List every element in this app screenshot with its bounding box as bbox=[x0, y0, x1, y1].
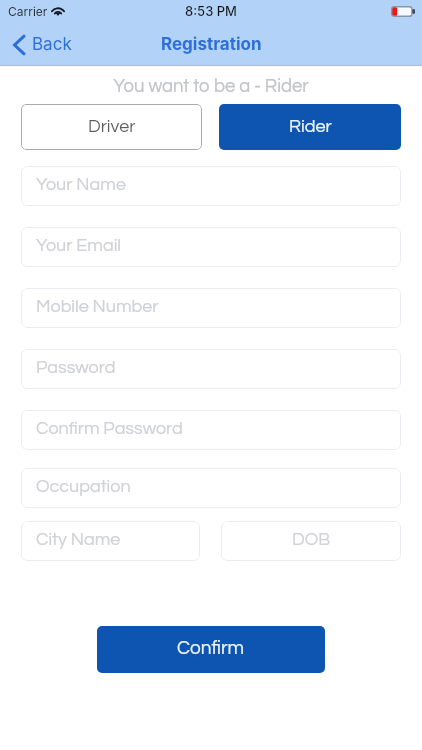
staticText: Driver bbox=[88, 117, 136, 136]
staticText: Back bbox=[32, 34, 72, 55]
staticText: Your Email bbox=[36, 236, 122, 255]
button[interactable]: City Name bbox=[21, 521, 200, 561]
staticText: Registration bbox=[161, 34, 262, 55]
button[interactable]: Confirm Password bbox=[21, 410, 401, 450]
staticText: City Name bbox=[36, 530, 121, 549]
button[interactable]: Rider bbox=[219, 104, 401, 150]
button[interactable]: Confirm bbox=[97, 626, 325, 673]
staticText: DOB bbox=[292, 530, 331, 549]
button[interactable]: Driver bbox=[21, 104, 202, 150]
button[interactable]: Your Email bbox=[21, 227, 401, 267]
staticText: Confirm Password bbox=[36, 419, 183, 438]
button[interactable]: Back bbox=[0, 27, 84, 62]
button[interactable]: Password bbox=[21, 349, 401, 389]
staticText: Password bbox=[36, 358, 116, 377]
staticText: 8:53 PM bbox=[185, 3, 237, 19]
staticText: You want to be a - Rider bbox=[21, 77, 401, 96]
staticText: Confirm bbox=[177, 638, 245, 658]
staticText: Occupation bbox=[36, 477, 131, 496]
staticText: Rider bbox=[289, 117, 332, 136]
button[interactable]: DOB bbox=[221, 521, 401, 561]
button[interactable]: Occupation bbox=[21, 468, 401, 508]
staticText: Mobile Number bbox=[36, 297, 159, 316]
staticText: Your Name bbox=[36, 175, 126, 194]
button[interactable]: Mobile Number bbox=[21, 288, 401, 328]
button[interactable]: Your Name bbox=[21, 166, 401, 206]
staticText: Carrier bbox=[8, 4, 48, 19]
